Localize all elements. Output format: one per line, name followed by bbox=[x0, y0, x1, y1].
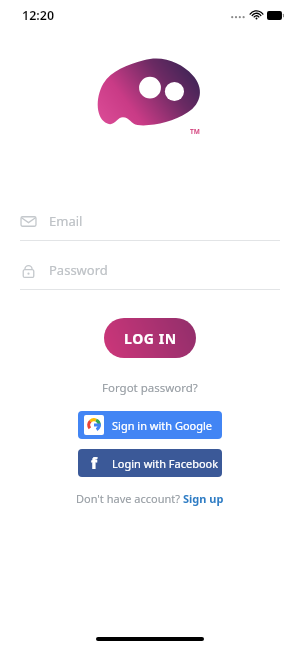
staticText: Login with Facebook bbox=[112, 456, 219, 471]
staticText: Sign up bbox=[183, 491, 224, 506]
button[interactable]: LOG IN bbox=[104, 318, 196, 358]
button[interactable]: f bbox=[78, 449, 222, 477]
staticText: Don't have account? bbox=[76, 491, 183, 506]
button[interactable]: Email bbox=[20, 208, 280, 241]
staticText: Password bbox=[49, 261, 108, 279]
staticText: LOG IN bbox=[124, 329, 177, 348]
button[interactable]: Password bbox=[20, 257, 280, 290]
staticText: Email bbox=[49, 212, 83, 230]
staticText: Sign in with Google bbox=[112, 418, 213, 433]
button[interactable]: Sign in with Google bbox=[78, 411, 222, 439]
staticText: f bbox=[91, 453, 98, 473]
staticText: Forgot password? bbox=[102, 380, 198, 396]
button[interactable]: Forgot password? bbox=[96, 377, 204, 399]
button[interactable]: Sign up bbox=[183, 491, 224, 506]
staticText: 12:20 bbox=[22, 7, 55, 24]
staticText: TM bbox=[190, 127, 200, 136]
